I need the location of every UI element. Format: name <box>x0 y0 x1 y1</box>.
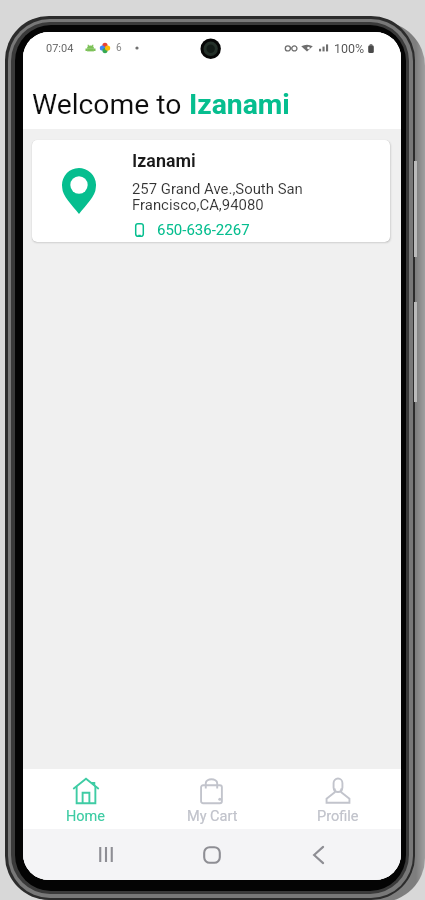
staticText: Izanami <box>189 88 290 121</box>
button[interactable]: Home <box>159 829 265 880</box>
staticText: 650-636-2267 <box>157 221 250 239</box>
staticText: 07:04 <box>46 42 74 55</box>
staticText: My Cart <box>187 808 238 825</box>
button[interactable]: Home <box>23 769 149 829</box>
staticText: Welcome to <box>32 88 189 121</box>
button[interactable]: Profile <box>275 769 401 829</box>
staticText: Profile <box>317 808 359 825</box>
staticText: 257 Grand Ave.,South San Francisco,CA,94… <box>132 180 380 214</box>
button[interactable]: Back <box>265 829 371 880</box>
button[interactable]: My Cart <box>149 769 275 829</box>
button[interactable]: Recent apps <box>53 829 159 880</box>
staticText: 100% <box>334 41 365 56</box>
button[interactable]: Izanami <box>32 140 390 242</box>
staticText: Home <box>66 808 106 825</box>
staticText: Izanami <box>132 150 196 171</box>
staticText: 6 <box>116 42 122 54</box>
